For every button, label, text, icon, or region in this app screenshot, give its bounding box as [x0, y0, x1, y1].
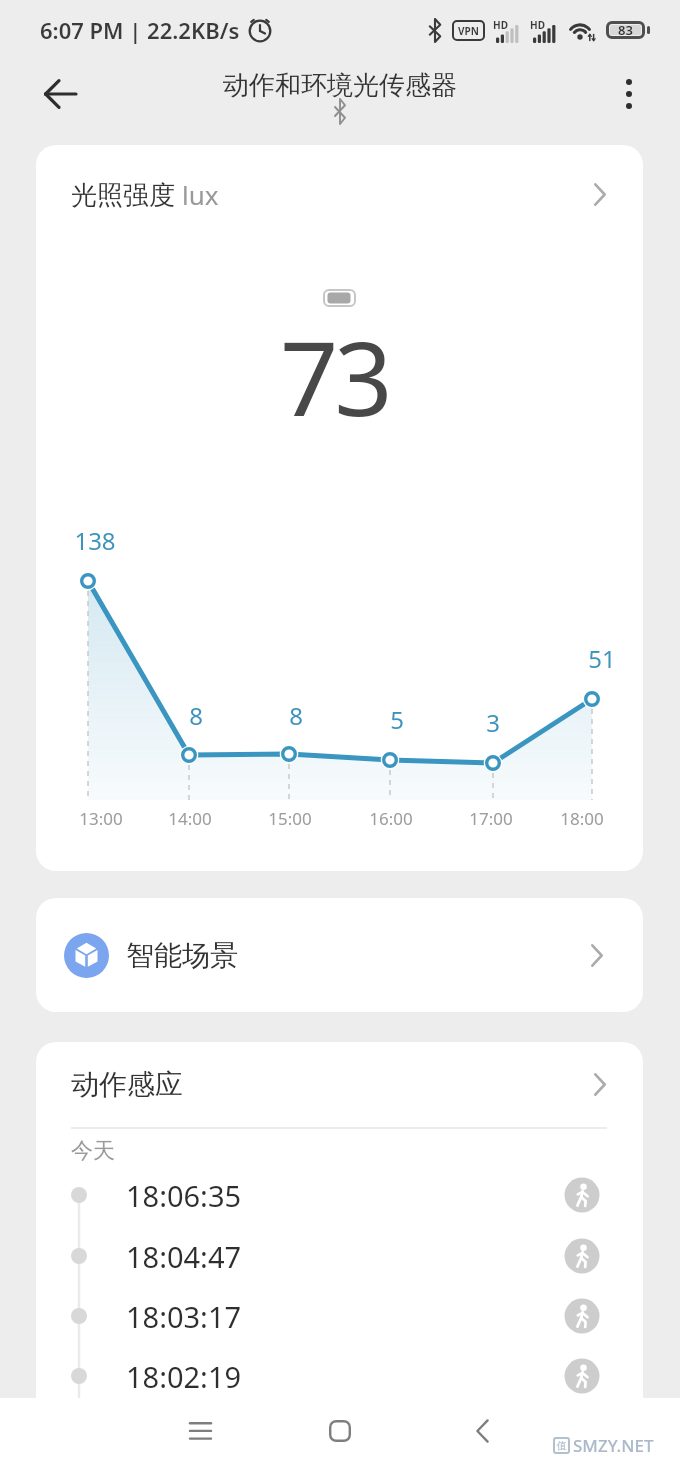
staticText: 值	[557, 1439, 567, 1452]
staticText: 13:00	[79, 807, 123, 830]
staticText: 138	[74, 524, 116, 557]
button[interactable]: 18:03:17	[116, 1292, 576, 1340]
staticText: HD	[493, 18, 508, 32]
button[interactable]: 动作感应	[36, 1060, 643, 1108]
button[interactable]: 18:06:35	[116, 1171, 576, 1219]
staticText: 14:00	[168, 807, 212, 830]
staticText: 17:00	[469, 807, 513, 830]
staticText: SMZY.NET	[573, 1434, 654, 1457]
staticText: 18:02:19	[126, 1357, 242, 1396]
button[interactable]	[316, 1407, 364, 1455]
staticText: 5	[390, 703, 404, 736]
staticText: HD	[530, 18, 545, 32]
staticText: 今天	[71, 1137, 115, 1165]
button[interactable]: 18:02:19	[116, 1352, 576, 1398]
staticText: 6:07 PM | 22.2KB/s	[40, 15, 240, 45]
staticText: 8	[289, 699, 303, 732]
button[interactable]	[458, 1407, 506, 1455]
staticText: 动作和环境光传感器	[223, 69, 457, 102]
staticText: 73	[280, 307, 389, 427]
staticText: 3	[486, 706, 500, 739]
staticText: 18:03:17	[126, 1297, 242, 1336]
button[interactable]: 18:04:47	[116, 1232, 576, 1280]
button[interactable]: 光照强度	[36, 173, 643, 215]
staticText: 18:06:35	[126, 1176, 242, 1215]
staticText: 8	[189, 699, 203, 732]
staticText: 智能场景	[126, 938, 238, 973]
staticText: 83	[618, 21, 633, 39]
staticText: 15:00	[268, 807, 312, 830]
staticText: 光照强度	[71, 176, 182, 212]
staticText: 16:00	[369, 807, 413, 830]
staticText: VPN	[458, 24, 479, 38]
staticText: 动作感应	[71, 1067, 183, 1102]
staticText: lux	[182, 177, 219, 212]
staticText: 51	[588, 642, 616, 675]
staticText: 18:04:47	[126, 1237, 242, 1276]
button[interactable]	[176, 1407, 224, 1455]
button[interactable]	[36, 69, 86, 119]
staticText: 18:00	[560, 807, 604, 830]
button[interactable]	[605, 69, 653, 119]
button[interactable]: 智能场景	[36, 898, 643, 1012]
